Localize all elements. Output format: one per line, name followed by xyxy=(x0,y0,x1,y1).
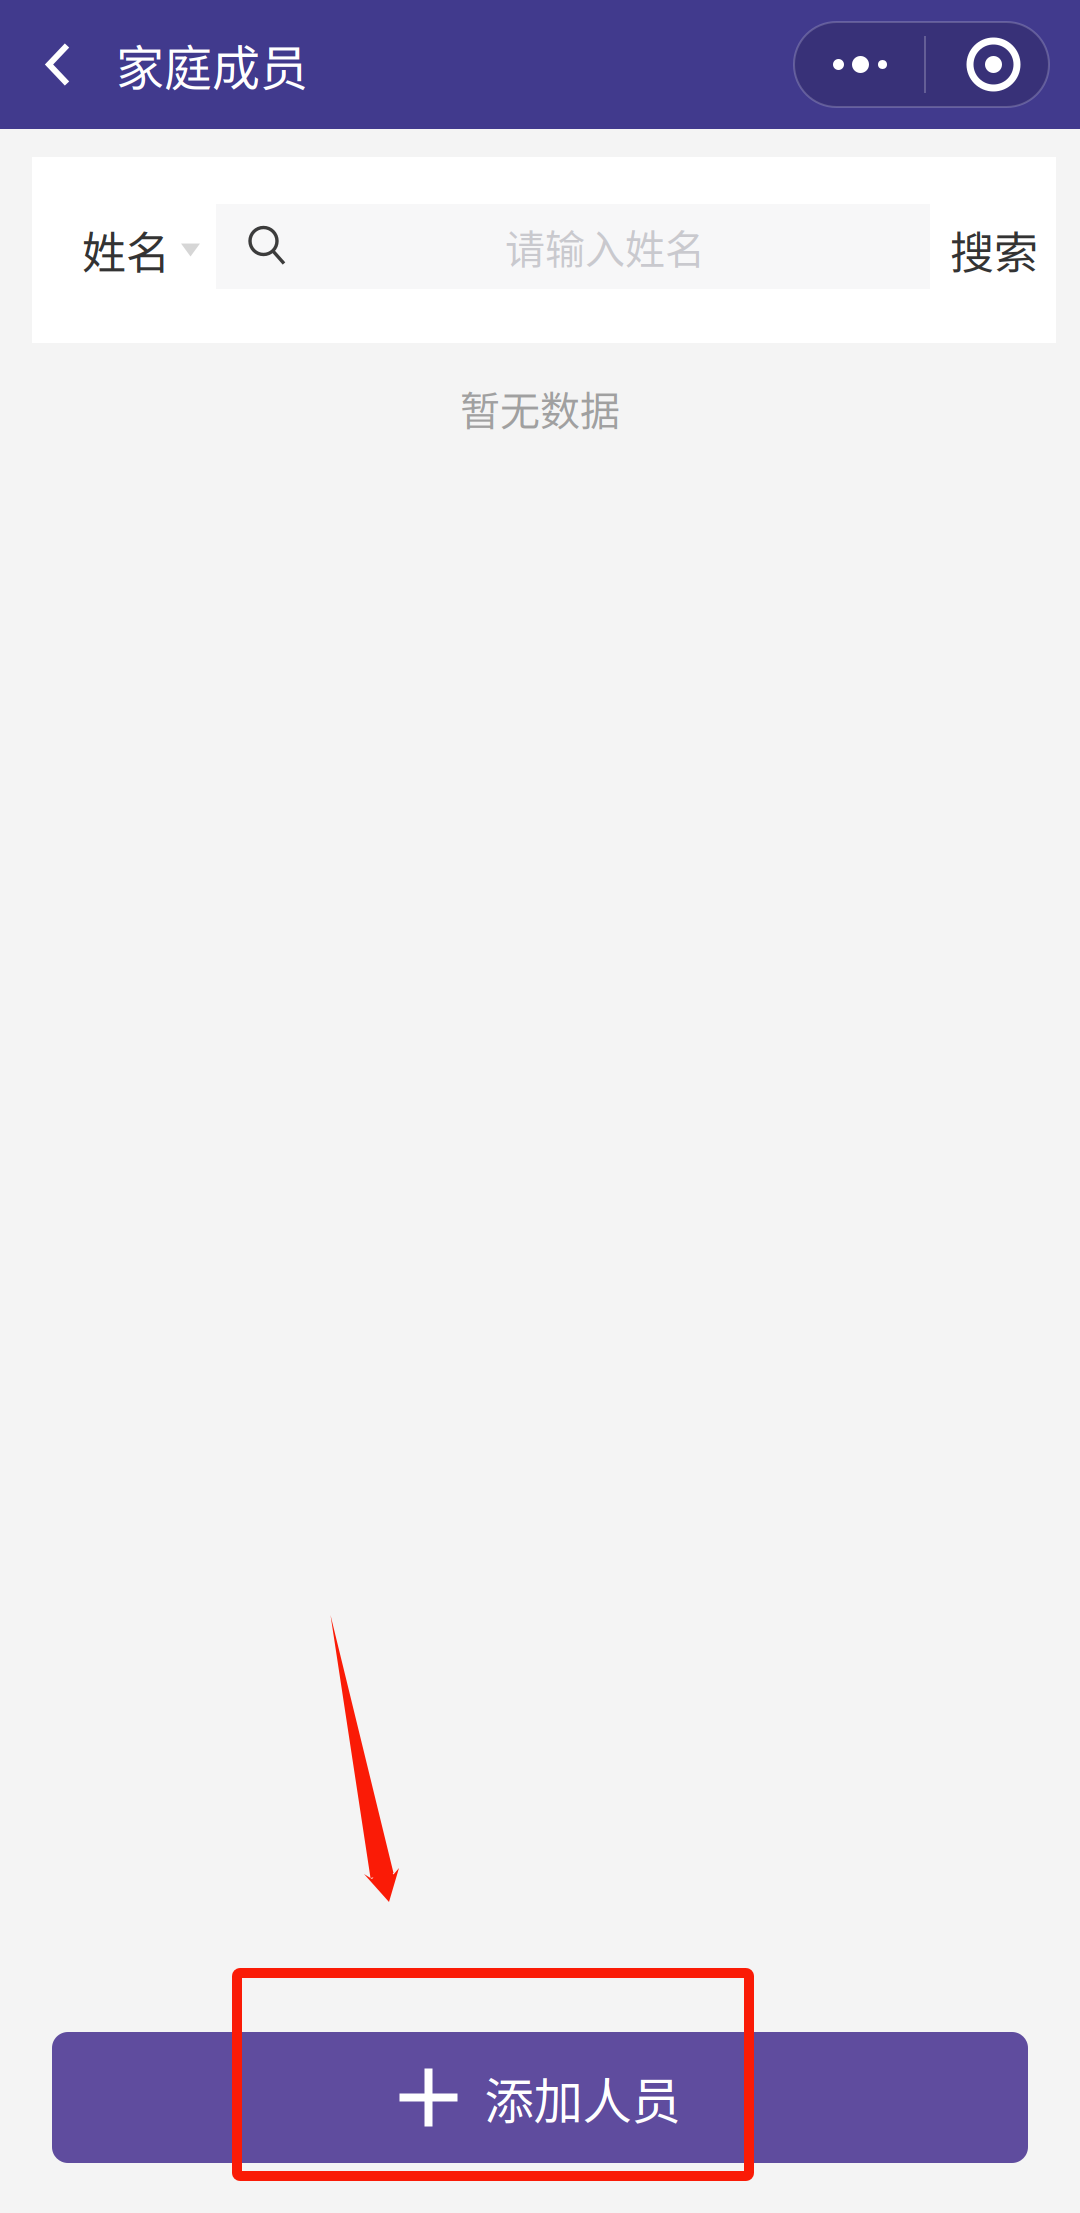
staticText: 搜索 xyxy=(950,218,1038,282)
staticText: 请输入姓名 xyxy=(505,217,705,275)
staticText: 姓名 xyxy=(82,218,170,282)
staticText: 添加人员 xyxy=(484,2062,680,2133)
button[interactable]: More xyxy=(794,22,922,107)
button[interactable]: 添加人员 xyxy=(52,2032,1028,2163)
staticText: 家庭成员 xyxy=(116,30,308,99)
staticText: 暂无数据 xyxy=(460,379,620,437)
button[interactable]: 搜索 xyxy=(950,157,1050,343)
button[interactable]: Close mini program xyxy=(926,22,1049,107)
button[interactable]: 姓名 xyxy=(82,157,216,343)
button[interactable]: Back xyxy=(0,0,116,129)
button[interactable]: 请输入姓名 xyxy=(216,204,930,289)
